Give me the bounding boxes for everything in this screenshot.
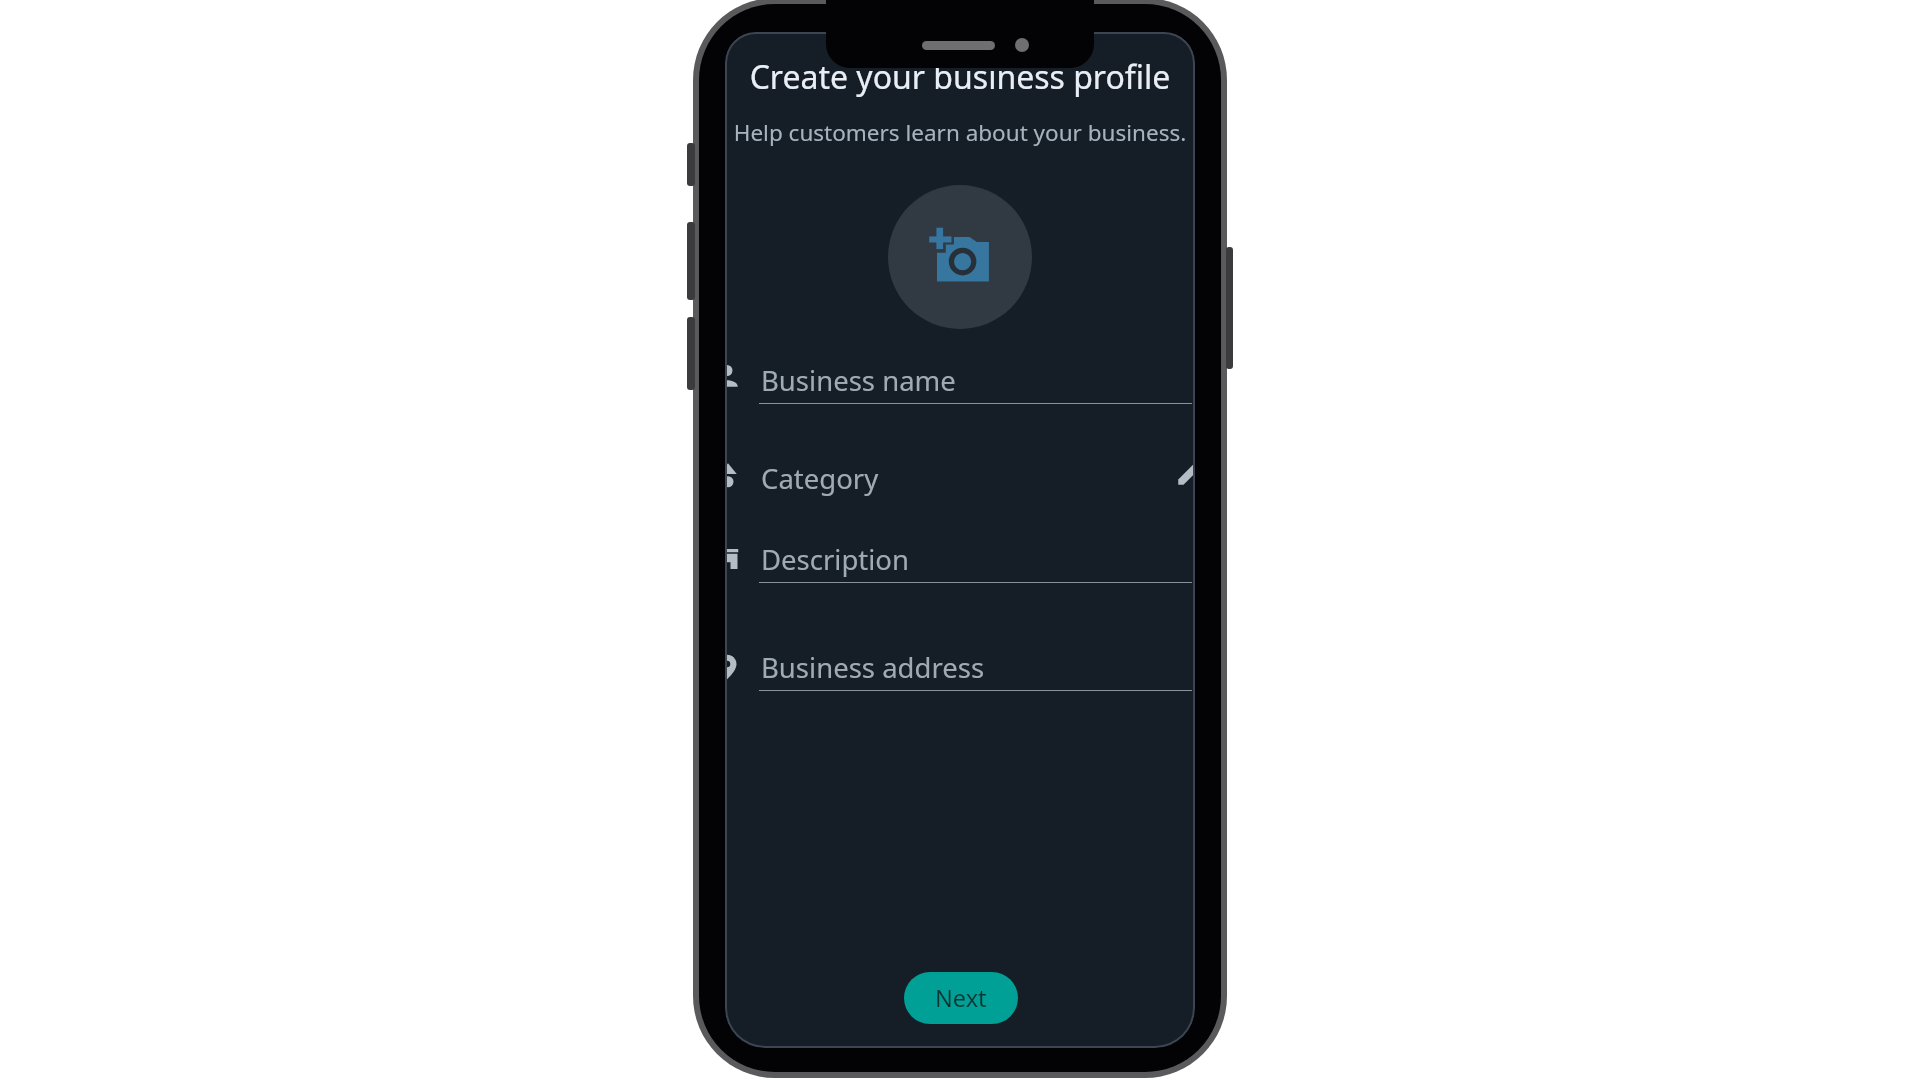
- staticText: Next: [935, 982, 987, 1014]
- staticText: Help customers learn about your business…: [725, 117, 1195, 148]
- button[interactable]: Business address: [725, 634, 1195, 702]
- button[interactable]: Description: [725, 526, 1195, 594]
- button[interactable]: Business name: [725, 347, 1195, 415]
- staticText: Business name: [761, 362, 956, 399]
- button[interactable]: Category: [725, 445, 1195, 513]
- button[interactable]: Next: [904, 972, 1018, 1024]
- staticText: Create your business profile: [725, 55, 1195, 99]
- staticText: Category: [761, 460, 879, 497]
- button[interactable]: Add business photo: [888, 185, 1032, 329]
- staticText: Business address: [761, 649, 985, 686]
- staticText: Description: [761, 541, 909, 578]
